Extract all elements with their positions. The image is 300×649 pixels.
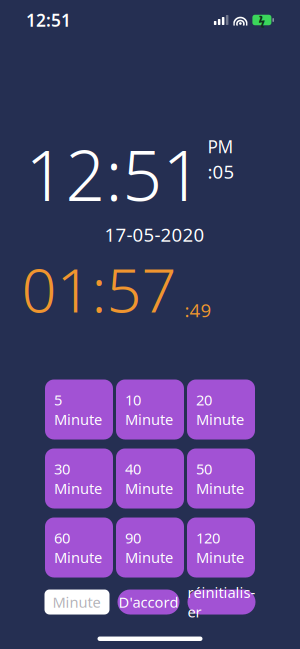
staticText: PM [207,135,233,158]
button[interactable]: 120 Minute [187,517,255,577]
staticText: Minute [52,592,100,612]
staticText: D'accord [118,592,178,612]
staticText: 10 Minute [125,390,173,429]
button[interactable]: 90 Minute [116,517,184,577]
button[interactable]: D'accord [117,589,179,614]
staticText: 30 Minute [54,459,102,498]
staticText: 01:57 [21,248,176,329]
staticText: 60 Minute [54,528,102,567]
button[interactable]: 40 Minute [116,448,184,508]
staticText: 17-05-2020 [104,222,204,247]
button[interactable]: 20 Minute [187,379,255,439]
staticText: :05 [207,159,234,184]
staticText: réinitialiser [187,582,255,621]
staticText: 20 Minute [196,390,244,429]
button[interactable]: 5 Minute [45,379,113,439]
staticText: 120 Minute [196,528,244,567]
staticText: 50 Minute [196,459,244,498]
button[interactable]: 50 Minute [187,448,255,508]
staticText: ϟ [258,12,265,28]
staticText: 12:51 [25,128,202,220]
staticText: :49 [184,297,211,322]
button[interactable]: 60 Minute [45,517,113,577]
staticText: 90 Minute [125,528,173,567]
button[interactable]: 10 Minute [116,379,184,439]
button[interactable]: réinitialiser [187,589,255,614]
button[interactable]: Minute [44,589,109,614]
staticText: 5 Minute [54,390,102,429]
button[interactable]: 30 Minute [45,448,113,508]
staticText: 40 Minute [125,459,173,498]
staticText: 12:51 [26,8,71,31]
